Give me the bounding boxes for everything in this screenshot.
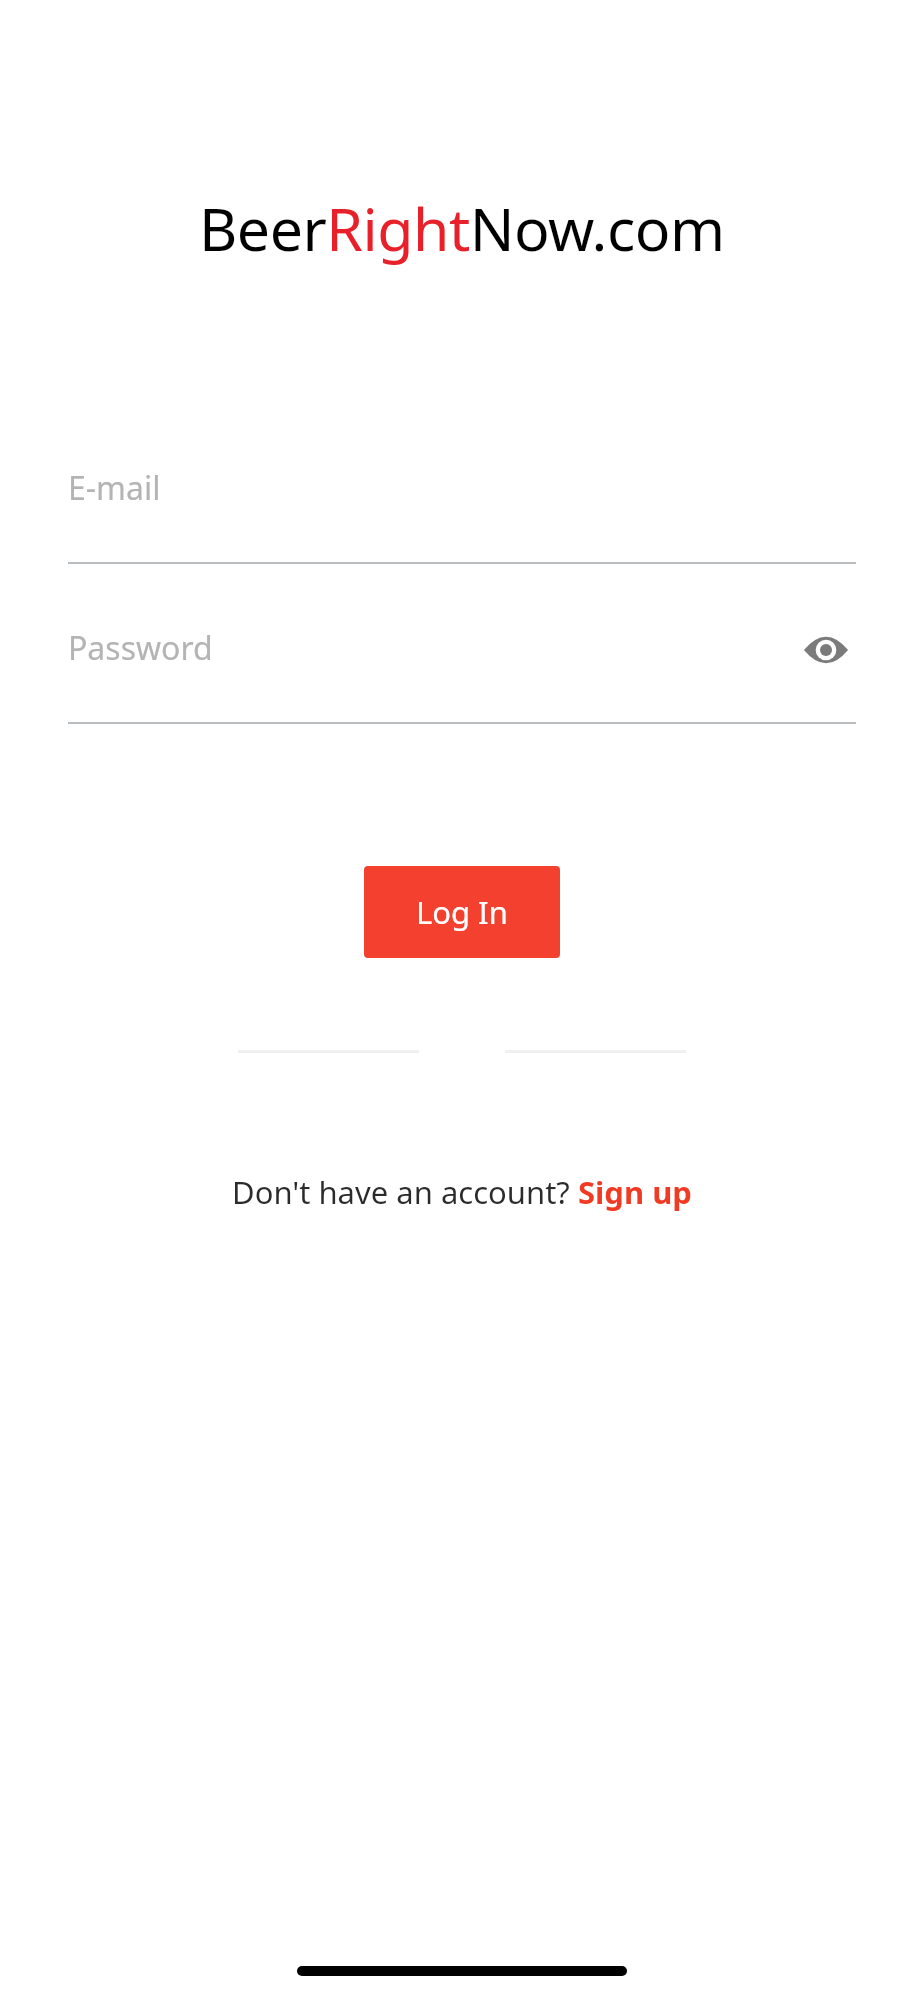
staticText: Password [68,626,213,670]
staticText: Log In [416,891,508,933]
staticText: BeerRightNow.com [199,188,725,268]
button[interactable]: Log In [364,866,560,958]
button[interactable]: E-mail [68,466,856,562]
button[interactable]: Don't have an account? [224,1165,700,1219]
staticText: E-mail [68,466,161,510]
button[interactable]: Show password [796,620,856,680]
button[interactable]: Password [68,626,856,722]
staticText: Sign up [578,1171,692,1213]
staticText: Don't have an account? [232,1171,578,1213]
